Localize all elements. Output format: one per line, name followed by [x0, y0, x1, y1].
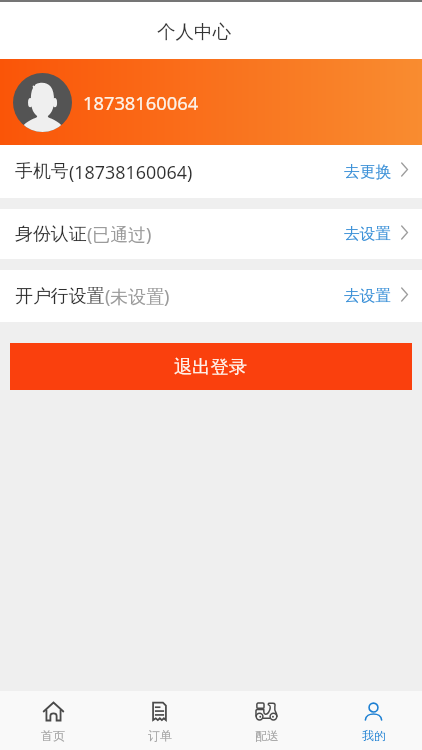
button[interactable]: 退出登录 [10, 343, 412, 390]
staticText: (18738160064) [69, 160, 193, 184]
staticText: 订单 [148, 728, 172, 743]
button[interactable]: 首页 [0, 691, 106, 750]
staticText: 去更换 [344, 162, 392, 182]
staticText: 去设置 [344, 286, 392, 306]
staticText: 配送 [255, 728, 279, 743]
staticText: 首页 [41, 728, 65, 743]
button[interactable]: 配送 [213, 691, 320, 750]
button[interactable]: 开户行设置 [0, 270, 422, 322]
button[interactable]: 订单 [106, 691, 213, 750]
staticText: 18738160064 [83, 90, 199, 115]
staticText: 退出登录 [174, 355, 248, 378]
staticText: 身份认证 [15, 223, 87, 246]
button[interactable]: 身份认证 [0, 209, 422, 259]
staticText: 去设置 [344, 224, 392, 244]
staticText: (未设置) [105, 284, 170, 308]
staticText: 手机号 [15, 160, 69, 183]
button[interactable]: 18738160064 [0, 59, 422, 145]
button[interactable]: 手机号 [0, 145, 422, 198]
staticText: (已通过) [87, 222, 152, 246]
staticText: 个人中心 [157, 20, 231, 43]
staticText: 开户行设置 [15, 285, 105, 308]
button[interactable]: 我的 [320, 691, 422, 750]
staticText: 我的 [362, 728, 386, 743]
